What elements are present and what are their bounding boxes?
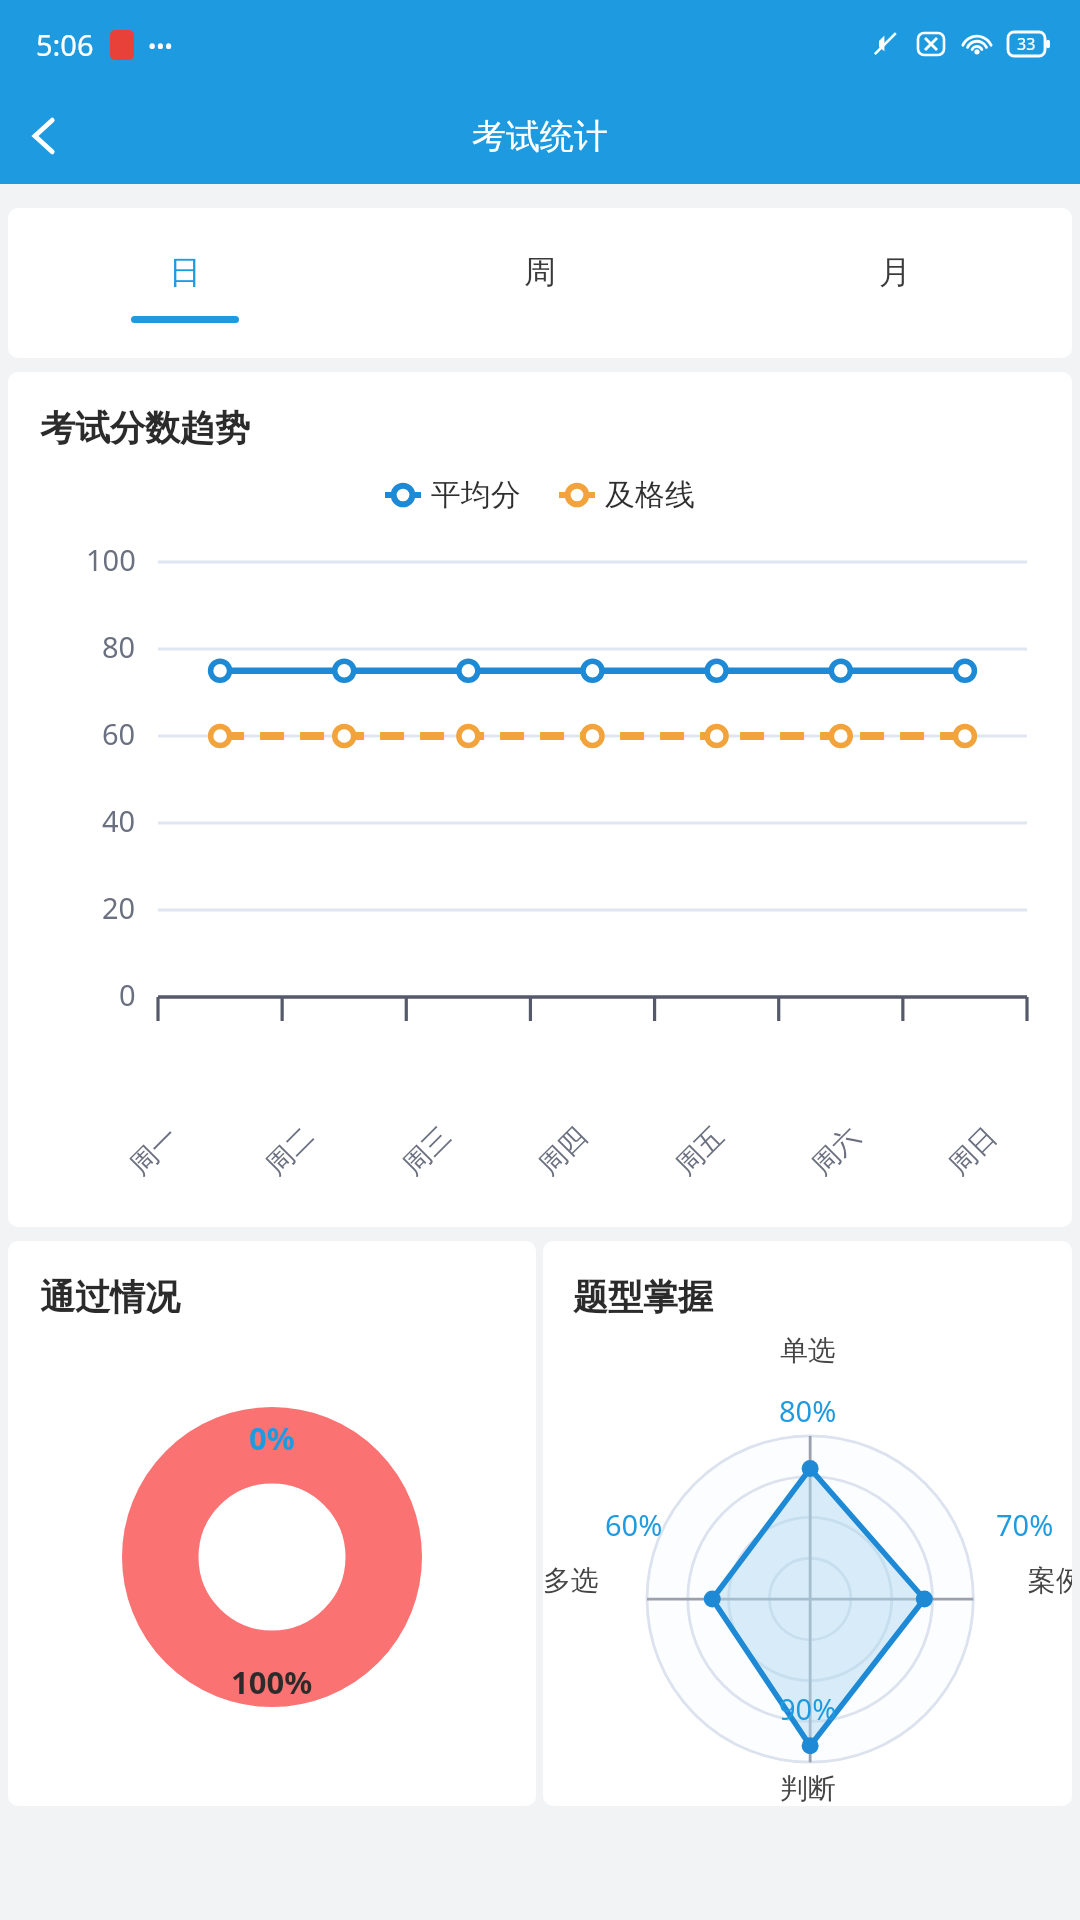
button[interactable]: 日 — [8, 208, 362, 358]
staticText: 通过情况 — [40, 1275, 180, 1319]
staticText: 周六 — [805, 1120, 867, 1182]
staticText: 0% — [249, 1417, 295, 1459]
staticText: 周日 — [942, 1120, 1004, 1182]
staticText: 周四 — [532, 1120, 594, 1182]
staticText: 周三 — [396, 1120, 458, 1182]
staticText: 100% — [231, 1661, 313, 1703]
staticText: 5:06 — [36, 25, 94, 64]
staticText: 33 — [1017, 33, 1036, 55]
staticText: 周一 — [123, 1120, 185, 1182]
staticText: 0 — [119, 975, 136, 1014]
staticText: 判断 — [780, 1771, 836, 1806]
staticText: 平均分 — [431, 476, 521, 514]
button[interactable]: Back — [10, 101, 80, 171]
staticText: 70% — [996, 1505, 1054, 1544]
staticText: 考试分数趋势 — [40, 406, 250, 450]
button[interactable]: 月 — [717, 208, 1072, 358]
button[interactable]: 周 — [362, 208, 717, 358]
staticText: 日 — [169, 252, 201, 292]
staticText: 考试统计 — [472, 115, 608, 158]
staticText: 80% — [779, 1391, 837, 1430]
staticText: 及格线 — [605, 476, 695, 514]
staticText: 多选 — [543, 1563, 599, 1598]
staticText: 月 — [879, 252, 911, 292]
staticText: 题型掌握 — [573, 1275, 713, 1319]
staticText: 80 — [102, 627, 136, 666]
staticText: 40 — [102, 801, 136, 840]
staticText: 案例 — [1028, 1563, 1072, 1598]
staticText: 60 — [102, 714, 136, 753]
staticText: 周二 — [259, 1120, 321, 1182]
staticText: 90% — [779, 1689, 837, 1728]
staticText: ••• — [148, 30, 173, 60]
staticText: 单选 — [780, 1333, 836, 1368]
staticText: 60% — [605, 1505, 663, 1544]
staticText: 周五 — [669, 1120, 731, 1182]
staticText: 100 — [86, 540, 136, 579]
staticText: 周 — [524, 252, 556, 292]
staticText: 20 — [102, 888, 136, 927]
